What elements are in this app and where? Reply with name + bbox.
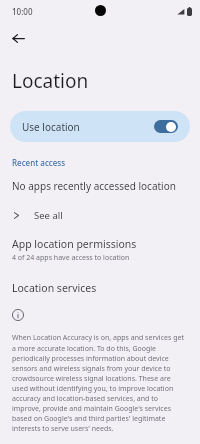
staticText: 4 of 24 apps have access to location [12,253,130,263]
other: Information [12,309,24,321]
staticText: When Location Accuracy is on, apps and s… [12,333,188,433]
staticText: No apps recently accessed location [12,179,176,193]
staticText: See all [34,209,63,222]
button[interactable]: Use location [10,111,190,142]
staticText: Recent access [12,157,66,168]
staticText: Location [12,68,89,94]
staticText: Use location [22,120,154,134]
button[interactable]: Back [6,26,30,50]
button[interactable]: See all [0,204,200,226]
staticText: 10:00 [12,6,33,17]
staticText: App location permissions [12,237,137,251]
staticText: Location services [12,281,97,295]
button[interactable]: App location permissions [0,236,200,265]
